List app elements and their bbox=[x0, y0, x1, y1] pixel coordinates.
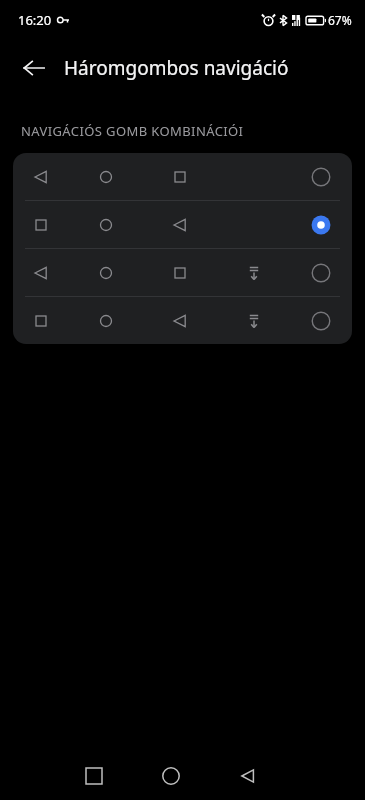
staticText: Háromgombos navigáció bbox=[64, 55, 289, 81]
button[interactable]: Back, Home, Recents bbox=[13, 153, 352, 200]
button[interactable]: Recents, Home, Back, Hide keyboard bbox=[13, 297, 352, 344]
button[interactable]: Back, Home, Recents, Hide keyboard bbox=[13, 249, 352, 296]
button[interactable]: Home bbox=[149, 754, 193, 798]
button[interactable]: Recents bbox=[72, 754, 116, 798]
button[interactable]: Back bbox=[12, 46, 56, 90]
button[interactable]: Recents, Home, Back bbox=[13, 201, 352, 248]
staticText: 67% bbox=[328, 12, 352, 28]
staticText: NAVIGÁCIÓS GOMB KOMBINÁCIÓI bbox=[21, 122, 244, 140]
staticText: 16:20 bbox=[18, 11, 52, 29]
button[interactable]: Back bbox=[226, 754, 270, 798]
